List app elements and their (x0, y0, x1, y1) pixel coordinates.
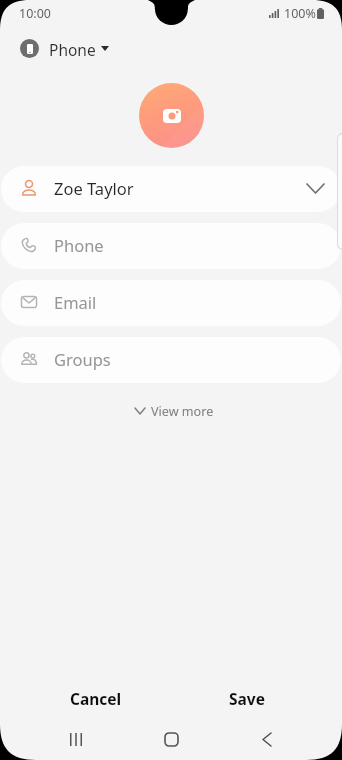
button[interactable]: Cancel (20, 684, 171, 712)
button[interactable]: Groups (1, 337, 341, 383)
staticText: Phone (49, 39, 96, 58)
staticText: 100% (284, 5, 316, 22)
button[interactable]: Back (219, 724, 314, 755)
button[interactable]: Add photo (139, 83, 204, 148)
button[interactable]: Save (171, 684, 322, 712)
staticText: Save (229, 688, 265, 709)
button[interactable]: Home (124, 724, 219, 755)
button[interactable]: Zoe Taylor (1, 166, 341, 212)
button[interactable]: Phone (20, 39, 109, 58)
staticText: Zoe Taylor (54, 177, 134, 199)
staticText: Groups (54, 348, 111, 370)
button[interactable]: Recent apps (28, 724, 124, 755)
staticText: View more (151, 403, 214, 420)
button[interactable]: Email (1, 280, 341, 326)
staticText: Phone (54, 234, 104, 256)
button[interactable]: View more (130, 400, 219, 422)
button[interactable]: Phone (1, 223, 341, 269)
staticText: 10:00 (19, 5, 51, 22)
staticText: Email (54, 291, 97, 313)
staticText: Cancel (70, 688, 122, 709)
